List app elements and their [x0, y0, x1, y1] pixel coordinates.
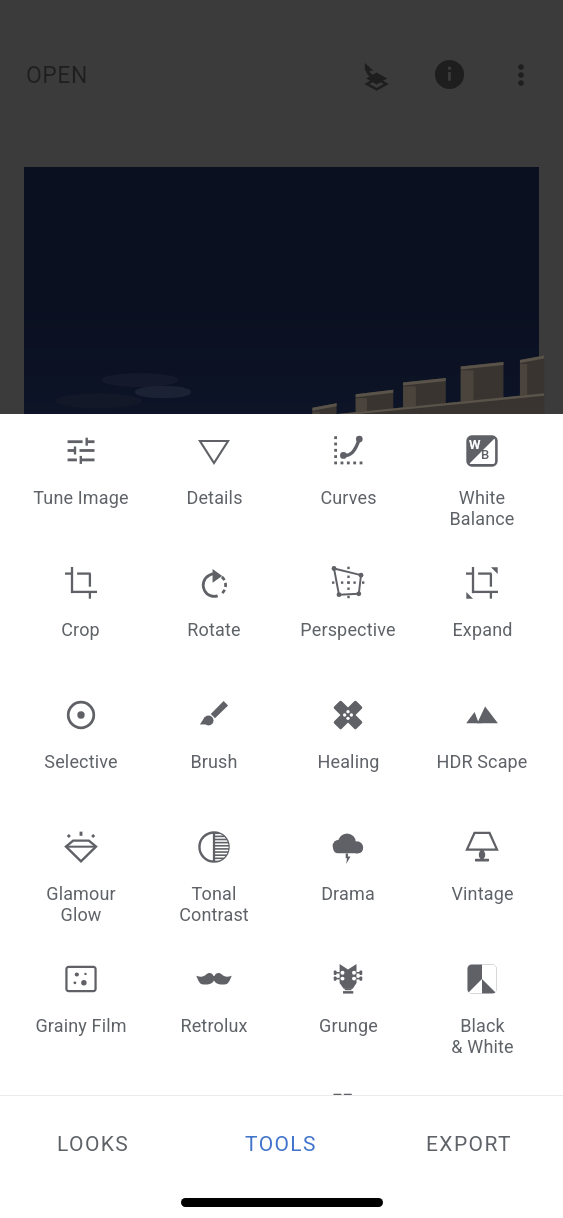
button[interactable]: Info: [427, 52, 471, 96]
button[interactable]: LOOKS: [0, 1096, 187, 1192]
staticText: White Balance: [449, 487, 515, 529]
button[interactable]: Brush: [147, 678, 281, 810]
staticText: Selective: [44, 751, 118, 772]
button[interactable]: Glamour Glow: [14, 810, 147, 942]
staticText: Tonal Contrast: [179, 883, 249, 925]
staticText: Perspective: [300, 619, 396, 640]
button[interactable]: Perspective: [281, 546, 415, 678]
staticText: Expand: [452, 619, 513, 640]
staticText: Crop: [61, 619, 100, 640]
button[interactable]: Grunge: [281, 942, 415, 1074]
button[interactable]: Black & White: [415, 942, 549, 1074]
staticText: Glamour Glow: [46, 883, 116, 925]
button[interactable]: Crop: [14, 546, 147, 678]
staticText: Drama: [321, 883, 375, 904]
staticText: HDR Scape: [436, 751, 528, 772]
staticText: Details: [186, 487, 243, 508]
staticText: EXPORT: [426, 1132, 512, 1157]
staticText: Grainy Film: [35, 1015, 127, 1036]
staticText: Curves: [320, 487, 377, 508]
staticText: TOOLS: [245, 1132, 317, 1157]
staticText: Tune Image: [33, 487, 129, 508]
button[interactable]: Vintage: [415, 810, 549, 942]
staticText: Grunge: [319, 1015, 378, 1036]
button[interactable]: Tune Image: [14, 414, 147, 546]
staticText: Retrolux: [180, 1015, 248, 1036]
staticText: Brush: [190, 751, 238, 772]
button[interactable]: Expand: [415, 546, 549, 678]
button[interactable]: Curves: [281, 414, 415, 546]
button[interactable]: OPEN: [8, 54, 106, 97]
button[interactable]: Rotate: [147, 546, 281, 678]
button[interactable]: EXPORT: [375, 1096, 563, 1192]
staticText: Rotate: [187, 619, 241, 640]
button[interactable]: W: [415, 414, 549, 546]
staticText: LOOKS: [57, 1132, 130, 1157]
staticText: OPEN: [26, 62, 88, 89]
staticText: Healing: [317, 751, 380, 772]
staticText: Black & White: [451, 1015, 514, 1057]
button[interactable]: More options: [499, 53, 543, 97]
staticText: W: [469, 437, 481, 452]
staticText: Vintage: [451, 883, 514, 904]
button[interactable]: Drama: [281, 810, 415, 942]
button[interactable]: Details: [147, 414, 281, 546]
button[interactable]: Tonal Contrast: [147, 810, 281, 942]
button[interactable]: HDR Scape: [415, 678, 549, 810]
button[interactable]: TOOLS: [187, 1096, 375, 1192]
button[interactable]: Healing: [281, 678, 415, 810]
button[interactable]: Selective: [14, 678, 147, 810]
button[interactable]: Grainy Film: [14, 942, 147, 1074]
button[interactable]: Revert: [354, 53, 398, 97]
staticText: B: [481, 447, 490, 462]
button[interactable]: Retrolux: [147, 942, 281, 1074]
